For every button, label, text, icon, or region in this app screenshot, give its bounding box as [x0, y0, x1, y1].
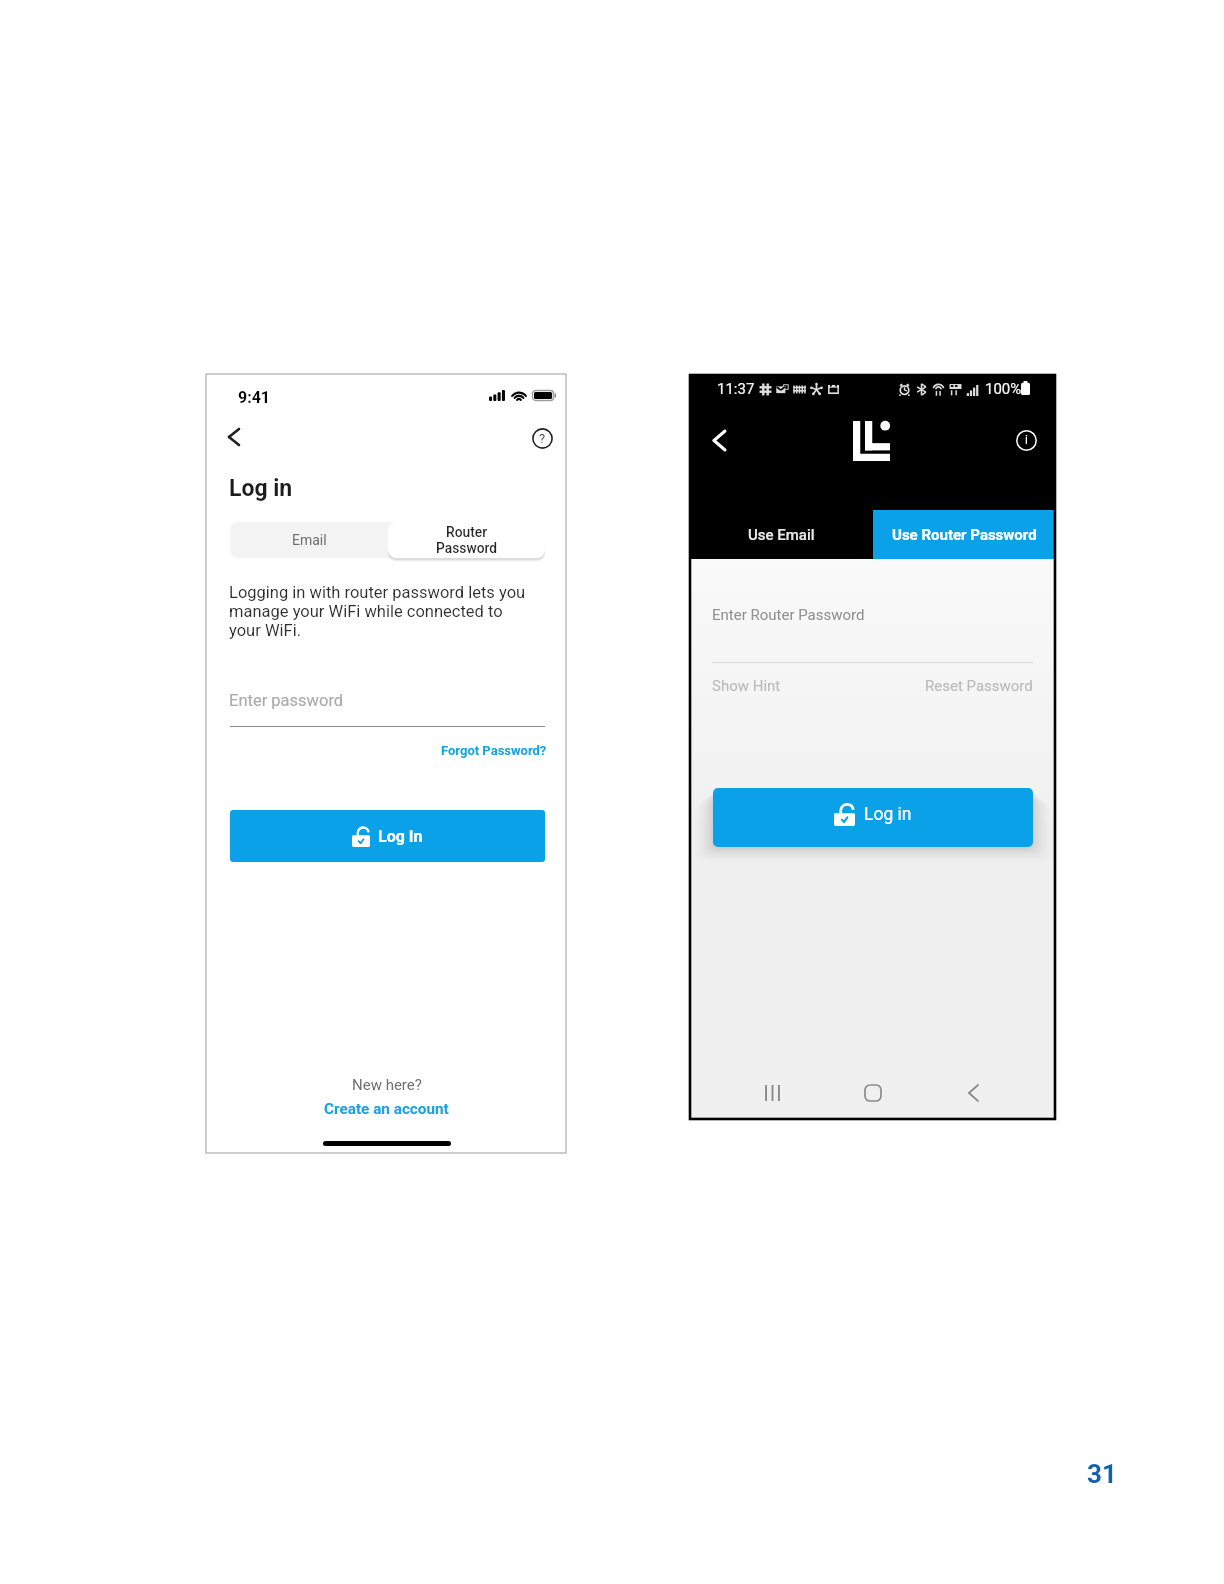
button[interactable]: Use Router Password [873, 510, 1055, 559]
staticText: Reset Password [925, 677, 1033, 695]
staticText: Logging in with router password lets you… [229, 583, 530, 640]
staticText: Use Email [748, 526, 815, 544]
button[interactable]: Create an account [316, 1097, 457, 1121]
staticText: Log in [229, 475, 293, 502]
staticText: 9:41 [238, 388, 271, 407]
staticText: 31 [1087, 1459, 1117, 1489]
staticText: 100% [985, 380, 1022, 398]
staticText: Enter Router Password [712, 606, 865, 624]
staticText: Use Router Password [892, 526, 1037, 544]
staticText: New here? [352, 1076, 422, 1094]
staticText: Enter password [229, 691, 344, 710]
button[interactable]: Info [1014, 428, 1038, 452]
button[interactable]: Back [707, 428, 731, 452]
button[interactable]: Reset Password [917, 669, 1041, 703]
button[interactable]: Router Password [388, 522, 545, 558]
button[interactable]: Recent apps [750, 1069, 794, 1117]
staticText: Log In [378, 827, 423, 846]
button[interactable]: Show Hint [704, 669, 789, 703]
staticText: Create an account [324, 1100, 449, 1118]
button[interactable]: Email [230, 522, 388, 558]
staticText: Forgot Password? [441, 743, 547, 758]
staticText: Log in [864, 804, 912, 825]
staticText: Email [292, 532, 327, 548]
button[interactable]: Help [530, 426, 554, 450]
staticText: ? [539, 431, 546, 446]
button[interactable]: Home [851, 1069, 895, 1117]
button[interactable]: Forgot Password? [435, 737, 553, 764]
staticText: Router Password [436, 524, 497, 556]
button[interactable]: Go back [951, 1069, 995, 1117]
button[interactable]: Back [222, 425, 246, 449]
button[interactable]: Log in [713, 788, 1033, 847]
button[interactable]: Log In [230, 810, 545, 862]
staticText: i [1025, 433, 1028, 447]
button[interactable]: Use Email [690, 510, 873, 559]
staticText: 11:37 [717, 380, 755, 398]
staticText: Show Hint [712, 677, 781, 695]
